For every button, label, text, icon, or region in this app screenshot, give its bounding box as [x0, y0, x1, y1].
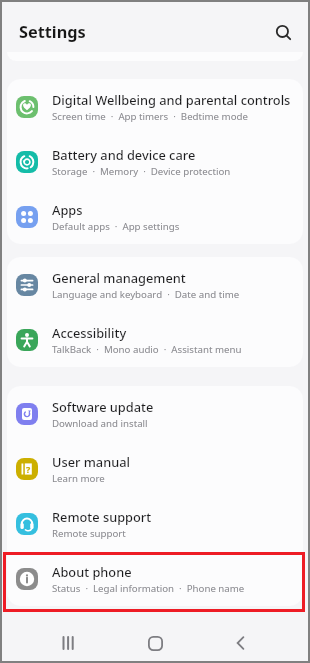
button[interactable]: General management [7, 257, 303, 312]
button[interactable]: Battery and device care [7, 134, 303, 189]
button[interactable]: Software update [7, 386, 303, 441]
button[interactable]: Accessibility [7, 312, 303, 367]
staticText: Remote support [52, 527, 126, 540]
staticText: Default apps · App settings [52, 220, 180, 233]
button[interactable] [198, 625, 284, 661]
staticText: Digital Wellbeing and parental controls [52, 91, 291, 108]
button[interactable] [275, 24, 293, 42]
staticText: General management [52, 269, 186, 286]
staticText: Accessibility [52, 324, 127, 341]
staticText: Settings [19, 21, 86, 43]
staticText: Remote support [52, 508, 152, 525]
button[interactable]: About phone [7, 551, 303, 606]
button[interactable]: ? [7, 441, 303, 496]
staticText: Download and install [52, 417, 148, 430]
button[interactable] [26, 625, 112, 661]
staticText: Status · Legal information · Phone name [52, 582, 245, 595]
staticText: ? [26, 463, 31, 475]
staticText: Language and keyboard · Date and time [52, 288, 240, 301]
button[interactable]: Digital Wellbeing and parental controls [7, 79, 303, 134]
staticText: About phone [52, 563, 132, 580]
staticText: Apps [52, 201, 83, 218]
staticText: Software update [52, 398, 154, 415]
button[interactable]: Apps [7, 189, 303, 244]
staticText: Battery and device care [52, 146, 196, 163]
button[interactable] [112, 625, 198, 661]
staticText: Storage · Memory · Device protection [52, 165, 231, 178]
staticText: TalkBack · Mono audio · Assistant menu [52, 343, 242, 356]
staticText: Learn more [52, 472, 105, 485]
staticText: User manual [52, 453, 131, 470]
staticText: Screen time · App timers · Bedtime mode [52, 110, 248, 123]
button[interactable]: Remote support [7, 496, 303, 551]
